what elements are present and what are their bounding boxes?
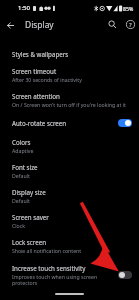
staticText: Screen timeout bbox=[12, 67, 57, 75]
staticText: Increase touch sensitivity bbox=[12, 264, 86, 272]
button[interactable]: Increase touch sensitivity bbox=[118, 271, 132, 279]
staticText: Default bbox=[12, 172, 30, 179]
button[interactable]: Display size bbox=[0, 183, 139, 208]
button[interactable]: Auto-rotate screen bbox=[118, 119, 132, 127]
staticText: 85% bbox=[123, 5, 134, 12]
button[interactable]: Screen attention bbox=[0, 87, 139, 113]
staticText: Screen saver bbox=[12, 213, 49, 221]
staticText: Adaptive bbox=[12, 147, 34, 154]
staticText: ? bbox=[129, 21, 132, 29]
button[interactable]: Back bbox=[0, 15, 20, 35]
staticText: Colors bbox=[12, 138, 31, 146]
button[interactable]: Font size bbox=[0, 158, 139, 183]
staticText: Show all notification content bbox=[12, 247, 82, 254]
button[interactable]: Search bbox=[103, 15, 121, 33]
button[interactable]: Styles & wallpapers bbox=[0, 44, 139, 63]
staticText: Improves touch when using screen protect… bbox=[12, 273, 114, 286]
staticText: Font size bbox=[12, 163, 38, 171]
staticText: Auto-rotate screen bbox=[12, 119, 67, 127]
staticText: Clock bbox=[12, 222, 26, 229]
staticText: On / Screen won't turn off if you're loo… bbox=[12, 101, 126, 108]
button[interactable]: Help bbox=[121, 15, 139, 33]
staticText: Screen attention bbox=[12, 92, 60, 100]
staticText: Styles & wallpapers bbox=[12, 50, 69, 58]
staticText: Lock screen bbox=[12, 238, 47, 246]
button[interactable]: Auto-rotate screen bbox=[0, 113, 139, 133]
button[interactable]: Screen timeout bbox=[0, 63, 139, 87]
button[interactable]: Increase touch sensitivity bbox=[0, 259, 139, 290]
staticText: Default bbox=[12, 197, 30, 204]
button[interactable]: Lock screen bbox=[0, 233, 139, 259]
staticText: After 30 seconds of inactivity bbox=[12, 76, 82, 83]
staticText: 1:50 bbox=[18, 4, 30, 12]
staticText: Display bbox=[25, 19, 54, 30]
staticText: Display size bbox=[12, 188, 46, 196]
button[interactable]: Colors bbox=[0, 133, 139, 158]
button[interactable]: Screen saver bbox=[0, 208, 139, 233]
